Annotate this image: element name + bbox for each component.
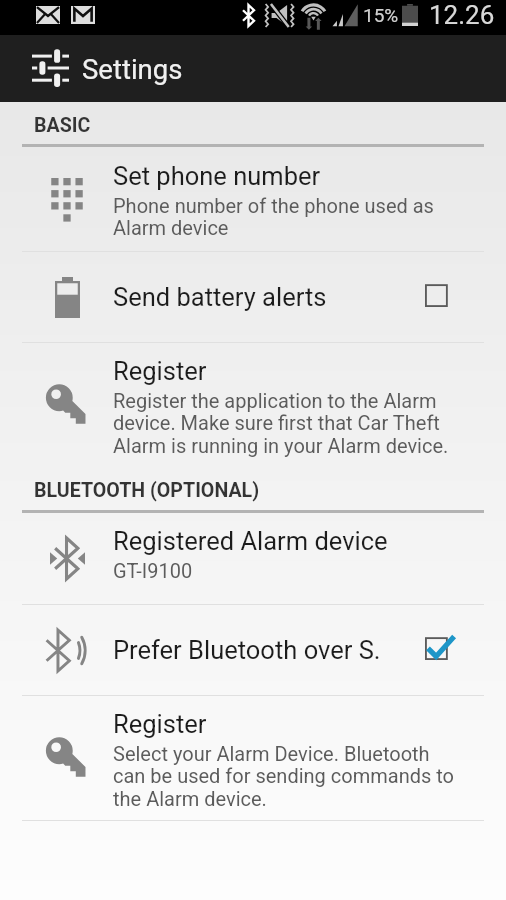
staticText: 15% xyxy=(363,4,399,26)
other: Settings xyxy=(32,49,69,88)
staticText: Register the application to the Alarm de… xyxy=(113,389,449,458)
button[interactable]: Unchecked xyxy=(413,274,459,320)
other: Bluetooth audio xyxy=(49,630,85,671)
staticText: Register xyxy=(113,709,207,739)
button[interactable]: Settings xyxy=(0,35,506,102)
other: Wi-Fi xyxy=(300,1,327,30)
button[interactable]: Paired Bluetooth device xyxy=(0,513,506,604)
other: Mobile signal xyxy=(332,3,358,27)
button[interactable]: Checked xyxy=(413,627,459,673)
staticText: BASIC xyxy=(34,114,91,137)
button[interactable]: Register xyxy=(0,343,506,467)
other: Paired Bluetooth device xyxy=(50,538,85,579)
staticText: Settings xyxy=(82,53,183,85)
button[interactable]: Register xyxy=(0,696,506,820)
other: Battery 15 percent xyxy=(402,4,418,26)
staticText: BLUETOOTH (OPTIONAL) xyxy=(34,479,260,502)
staticText: Prefer Bluetooth over S. xyxy=(113,635,381,665)
staticText: Send battery alerts xyxy=(113,282,327,312)
other: Battery xyxy=(55,277,80,318)
staticText: GT-I9100 xyxy=(113,559,193,582)
other: Silent mode xyxy=(264,3,297,28)
staticText: Set phone number xyxy=(113,161,321,191)
other: Register xyxy=(45,383,89,427)
other: Bluetooth xyxy=(243,5,254,26)
button[interactable]: Set phone number xyxy=(0,147,506,251)
staticText: Registered Alarm device xyxy=(113,526,388,556)
staticText: Register xyxy=(113,356,207,386)
button[interactable]: Battery xyxy=(0,252,506,342)
button[interactable]: Bluetooth audio xyxy=(0,605,506,695)
staticText: Select your Alarm Device. Bluetooth can … xyxy=(113,742,454,811)
staticText: 12.26 xyxy=(429,0,495,30)
other: Register xyxy=(45,736,89,780)
staticText: Phone number of the phone used as Alarm … xyxy=(113,194,434,240)
